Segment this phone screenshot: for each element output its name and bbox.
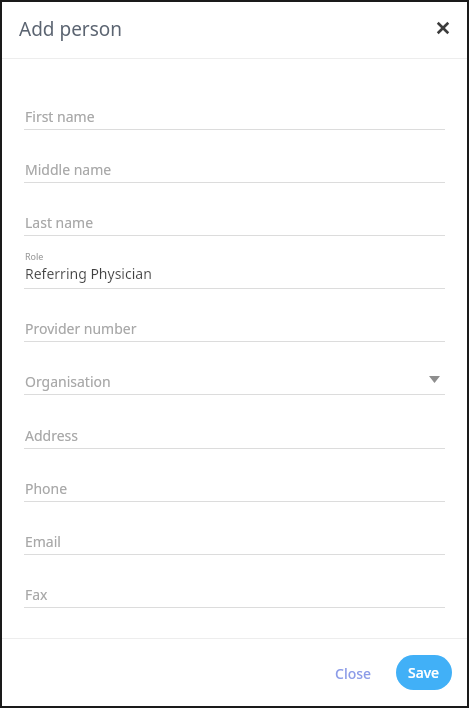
staticText: Email <box>25 532 61 551</box>
button[interactable]: Role <box>24 250 445 289</box>
staticText: Close <box>335 664 372 683</box>
button[interactable]: Save <box>396 655 452 690</box>
staticText: Role <box>25 250 44 262</box>
staticText: Address <box>25 426 78 445</box>
button[interactable]: Provider number <box>24 311 445 342</box>
staticText: Last name <box>25 213 94 232</box>
button[interactable]: Address <box>24 418 445 449</box>
staticText: Add person <box>19 16 123 42</box>
button[interactable]: Phone <box>24 471 445 502</box>
staticText: First name <box>25 107 95 126</box>
button[interactable]: Fax <box>24 577 445 608</box>
staticText: Organisation <box>25 372 111 391</box>
staticText: Fax <box>25 585 48 604</box>
button[interactable]: Close dialog <box>427 12 459 44</box>
staticText: Provider number <box>25 319 137 338</box>
button[interactable]: First name <box>24 99 445 130</box>
staticText: Phone <box>25 479 68 498</box>
button[interactable]: Organisation <box>24 364 445 395</box>
staticText: Referring Physician <box>25 264 152 283</box>
button[interactable]: Email <box>24 524 445 555</box>
button[interactable]: Close <box>322 655 384 691</box>
staticText: Save <box>408 663 440 682</box>
staticText: Middle name <box>25 160 112 179</box>
button[interactable]: Middle name <box>24 152 445 183</box>
button[interactable]: Last name <box>24 205 445 236</box>
